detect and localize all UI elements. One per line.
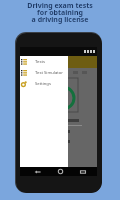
staticText: Driving exam tests for obtaining a drivi… (27, 1, 93, 25)
button[interactable]: Test Simulator (20, 67, 68, 78)
button[interactable]: Home (56, 169, 64, 174)
staticText: Settings (35, 81, 51, 87)
button[interactable]: Recent apps (79, 169, 87, 174)
staticText: Tests (35, 59, 45, 65)
button[interactable]: Tests (20, 56, 68, 67)
button[interactable]: Settings (20, 78, 68, 89)
button[interactable]: Back (33, 169, 41, 174)
staticText: Test Simulator (35, 70, 64, 76)
